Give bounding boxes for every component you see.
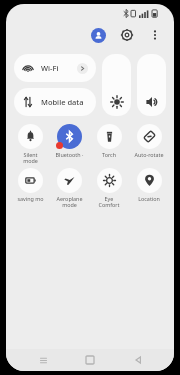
button[interactable]: Torch bbox=[89, 124, 129, 158]
button[interactable]: Wi-Fi bbox=[14, 54, 96, 82]
button[interactable]: Volume bbox=[137, 54, 166, 116]
button[interactable]: Settings bbox=[118, 26, 136, 44]
button[interactable]: User account bbox=[91, 28, 106, 43]
staticText: Aeroplane mode bbox=[50, 195, 89, 209]
staticText: Wi-Fi bbox=[41, 63, 59, 73]
button[interactable]: saving mo bbox=[11, 168, 50, 202]
button[interactable]: Recents bbox=[32, 349, 54, 371]
button[interactable]: More options bbox=[146, 26, 164, 44]
staticText: Torch bbox=[89, 151, 129, 158]
button[interactable]: Home bbox=[79, 349, 101, 371]
button[interactable]: Bluetooth · bbox=[50, 124, 89, 158]
button[interactable]: Auto-rotate bbox=[129, 124, 169, 158]
staticText: Silent mode bbox=[11, 151, 50, 165]
button[interactable]: Location bbox=[129, 168, 169, 202]
staticText: Bluetooth · bbox=[50, 151, 89, 158]
staticText: saving mo bbox=[11, 195, 50, 202]
button[interactable]: Mobile data bbox=[14, 88, 96, 116]
button[interactable]: Brightness bbox=[102, 54, 131, 116]
button[interactable]: Eye Comfort bbox=[89, 168, 129, 209]
button[interactable]: Back bbox=[127, 349, 149, 371]
staticText: Mobile data bbox=[41, 97, 84, 107]
button[interactable]: Aeroplane mode bbox=[50, 168, 89, 209]
staticText: Eye Comfort bbox=[89, 195, 129, 209]
staticText: Location bbox=[129, 195, 169, 202]
button[interactable]: Silent mode bbox=[11, 124, 50, 165]
staticText: Auto-rotate bbox=[129, 151, 169, 158]
